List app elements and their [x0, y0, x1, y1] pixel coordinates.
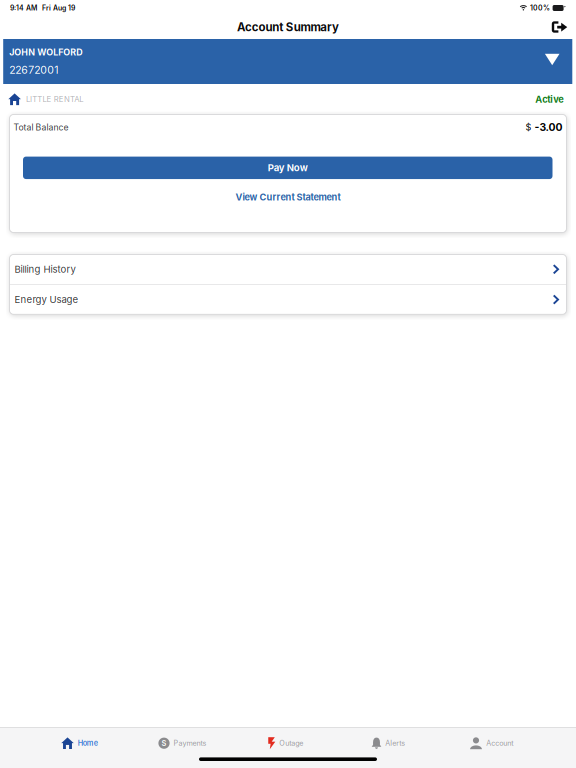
button[interactable]: Pay Now: [23, 157, 552, 179]
staticText: LITTLE RENTAL: [26, 95, 83, 104]
staticText: Billing History: [14, 263, 75, 275]
staticText: Outage: [279, 739, 303, 747]
button[interactable]: Billing History: [9, 254, 566, 284]
staticText: Energy Usage: [14, 294, 78, 305]
button[interactable]: Alerts: [337, 729, 440, 757]
staticText: View Current Statement: [235, 191, 340, 203]
staticText: 9:14 AM: [10, 4, 37, 12]
button[interactable]: Energy Usage: [9, 285, 566, 314]
staticText: Account: [486, 739, 513, 747]
staticText: JOHN WOLFORD: [9, 47, 82, 57]
staticText: Payments: [174, 739, 207, 747]
button[interactable]: JOHN WOLFORD: [0, 39, 576, 84]
staticText: 100%: [530, 4, 550, 12]
staticText: -3.00: [534, 121, 562, 134]
staticText: S: [161, 739, 166, 748]
staticText: Total Balance: [13, 122, 68, 132]
staticText: $: [525, 122, 531, 133]
staticText: Fri Aug 19: [42, 4, 75, 12]
button[interactable]: Sign Out: [547, 16, 571, 38]
button[interactable]: S: [131, 729, 234, 757]
staticText: Home: [78, 739, 98, 748]
button[interactable]: Home: [28, 729, 131, 757]
staticText: Pay Now: [268, 162, 308, 174]
button[interactable]: Account: [440, 729, 543, 757]
staticText: Active: [535, 94, 564, 105]
button[interactable]: View Current Statement: [9, 188, 566, 206]
staticText: 22672001: [9, 63, 58, 76]
button[interactable]: Outage: [234, 729, 337, 757]
staticText: Account Summary: [237, 20, 339, 34]
staticText: Alerts: [385, 739, 405, 747]
